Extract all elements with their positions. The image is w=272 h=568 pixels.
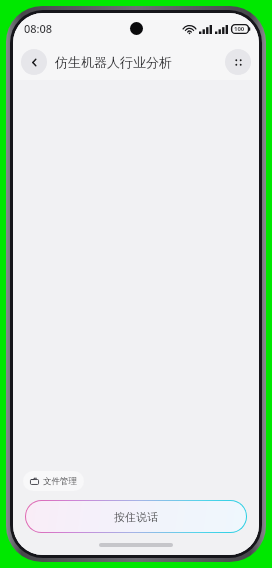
- button[interactable]: More options: [225, 49, 251, 75]
- staticText: 文件管理: [43, 476, 77, 487]
- button[interactable]: Back: [21, 49, 47, 75]
- button[interactable]: 按住说话: [26, 501, 246, 532]
- staticText: 08:08: [24, 21, 53, 36]
- staticText: 仿生机器人行业分析: [55, 54, 172, 70]
- button[interactable]: 文件管理: [23, 471, 84, 491]
- staticText: 按住说话: [114, 510, 158, 524]
- staticText: 100: [234, 25, 245, 33]
